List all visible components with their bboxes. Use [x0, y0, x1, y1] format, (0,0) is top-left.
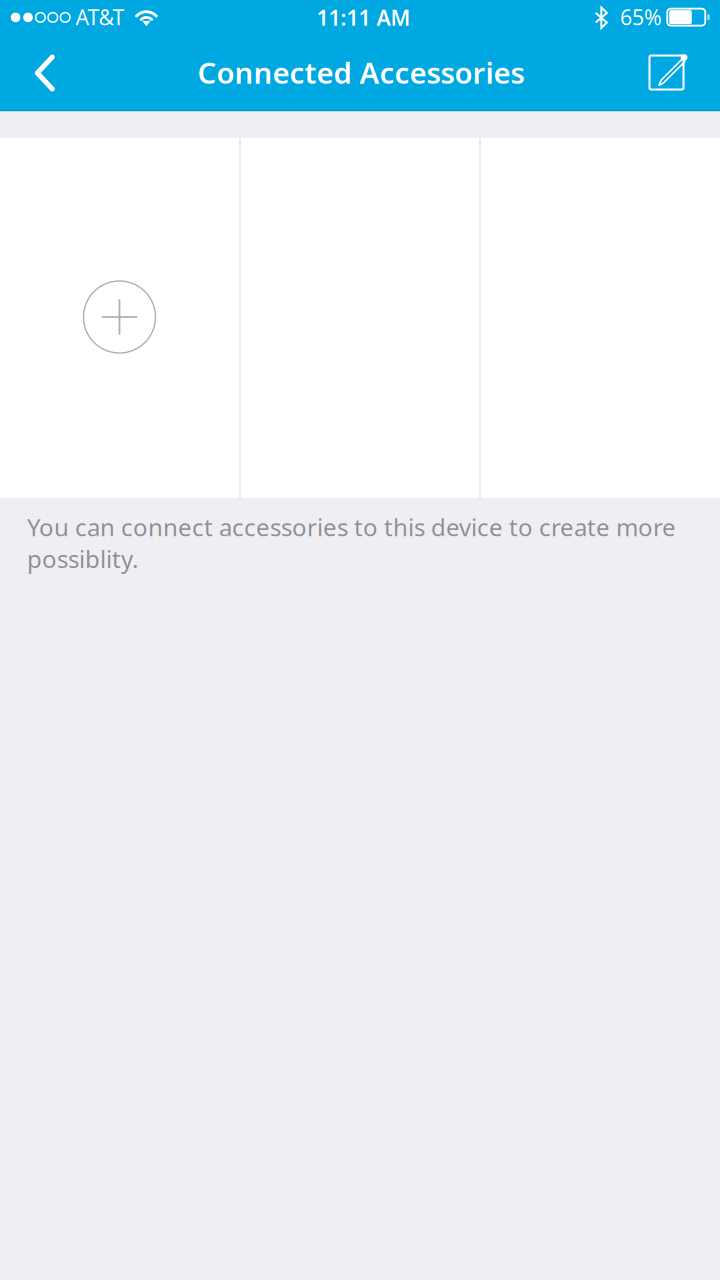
button[interactable]: Add accessory [0, 138, 239, 498]
staticText: 65% [620, 3, 662, 31]
staticText: 11:11 AM [316, 3, 410, 32]
staticText: Connected Accessories [197, 53, 524, 92]
staticText: You can connect accessories to this devi… [27, 511, 676, 575]
staticText: AT&T [75, 3, 124, 31]
button[interactable]: Edit [636, 37, 700, 107]
button[interactable]: Back [13, 38, 77, 108]
